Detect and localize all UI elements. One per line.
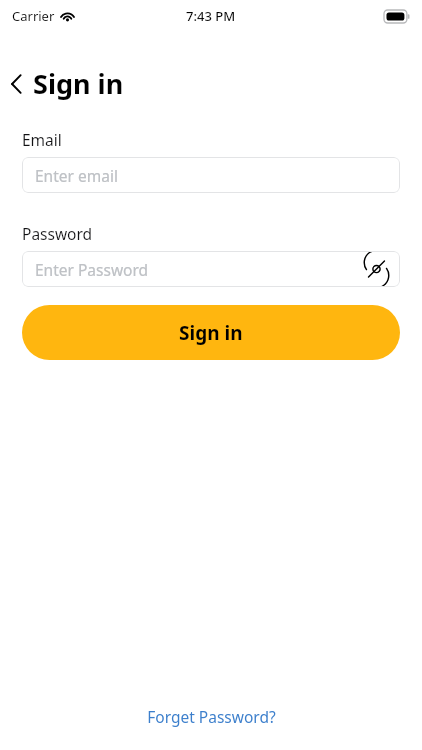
staticText: Password: [22, 223, 93, 244]
button[interactable]: Enter email: [22, 157, 400, 193]
staticText: Enter Password: [35, 259, 149, 280]
button[interactable]: Forget Password?: [137, 701, 286, 732]
staticText: Carrier: [12, 7, 55, 25]
staticText: Email: [22, 129, 62, 150]
staticText: Sign in: [33, 65, 124, 102]
button[interactable]: Back: [9, 72, 24, 96]
staticText: Sign in: [179, 320, 243, 346]
staticText: 7:43 PM: [186, 7, 236, 25]
staticText: Enter email: [35, 165, 118, 186]
button[interactable]: Show password: [366, 260, 387, 278]
button[interactable]: Enter Password: [22, 251, 400, 287]
staticText: Forget Password?: [147, 706, 276, 727]
button[interactable]: Sign in: [22, 305, 400, 360]
